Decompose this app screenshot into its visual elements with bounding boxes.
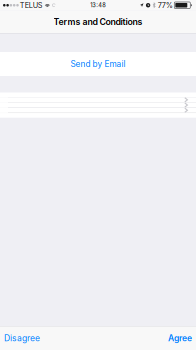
staticText: Terms and Conditions	[53, 16, 142, 27]
staticText: Send by Email	[70, 59, 125, 69]
button[interactable]: Agree	[164, 327, 196, 349]
staticText: Agree	[168, 333, 192, 343]
button[interactable]: Terms item	[0, 92, 196, 97]
staticText: TELUS	[20, 1, 43, 10]
staticText: Disagree	[4, 333, 40, 343]
button[interactable]: Terms item	[0, 97, 196, 102]
staticText: 13:48	[90, 2, 106, 9]
button[interactable]: Send by Email	[0, 52, 196, 76]
button[interactable]: Terms item	[0, 108, 196, 113]
staticText: 77%	[158, 1, 173, 10]
button[interactable]: Terms item	[0, 103, 196, 107]
button[interactable]: Disagree	[0, 327, 44, 349]
